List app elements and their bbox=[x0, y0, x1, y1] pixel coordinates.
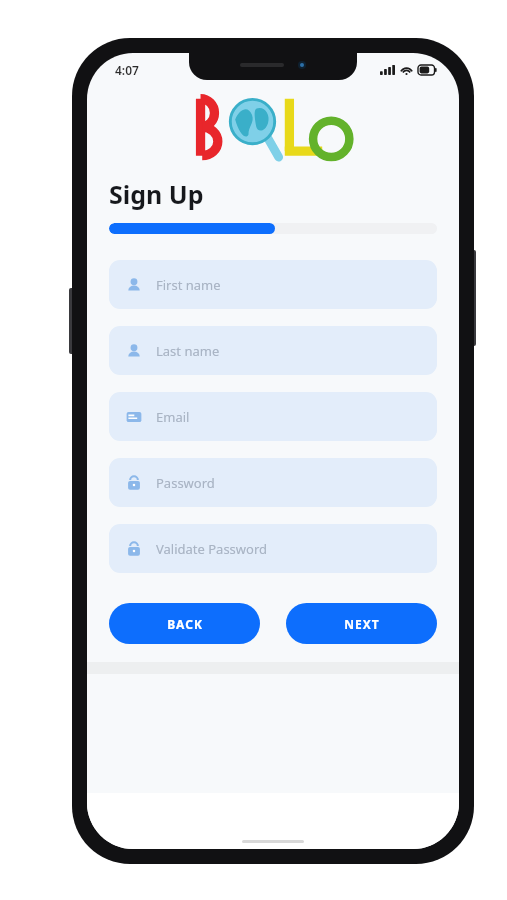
staticText: Email bbox=[156, 408, 190, 426]
staticText: NEXT bbox=[344, 616, 380, 632]
staticText: 4:07 bbox=[115, 62, 139, 78]
staticText: Validate Password bbox=[156, 540, 268, 558]
staticText: Password bbox=[156, 474, 215, 492]
button[interactable]: Password bbox=[109, 458, 437, 507]
button[interactable]: BACK bbox=[109, 603, 260, 644]
button[interactable]: NEXT bbox=[286, 603, 437, 644]
staticText: BACK bbox=[167, 616, 203, 632]
button[interactable]: First name bbox=[109, 260, 437, 309]
staticText: Sign Up bbox=[109, 177, 204, 211]
button[interactable]: Validate Password bbox=[109, 524, 437, 573]
button[interactable]: Last name bbox=[109, 326, 437, 375]
staticText: First name bbox=[156, 276, 221, 294]
button[interactable]: Email bbox=[109, 392, 437, 441]
staticText: Last name bbox=[156, 342, 220, 360]
